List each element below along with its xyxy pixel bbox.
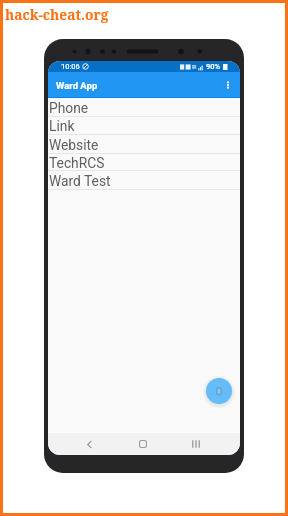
button[interactable]: Recents xyxy=(188,436,204,452)
button[interactable]: Website xyxy=(48,135,240,154)
staticText: TechRCS xyxy=(49,155,105,171)
staticText: 90% xyxy=(206,62,221,71)
staticText: hack-cheat.org xyxy=(5,5,109,24)
staticText: Phone xyxy=(49,100,89,116)
button[interactable]: Phone xyxy=(48,98,240,117)
button[interactable]: Ward Test xyxy=(48,171,240,190)
staticText: Ward App xyxy=(56,80,98,91)
button[interactable]: Back xyxy=(81,436,97,452)
button[interactable]: Home xyxy=(135,436,151,452)
staticText: Link xyxy=(49,118,75,134)
button[interactable]: TechRCS xyxy=(48,154,240,171)
button[interactable]: Link xyxy=(48,117,240,135)
button[interactable]: Add xyxy=(206,378,232,404)
staticText: Website xyxy=(49,137,99,153)
staticText: 10:06 xyxy=(61,62,80,71)
staticText: Ward Test xyxy=(49,173,111,189)
button[interactable]: More options xyxy=(217,74,239,96)
